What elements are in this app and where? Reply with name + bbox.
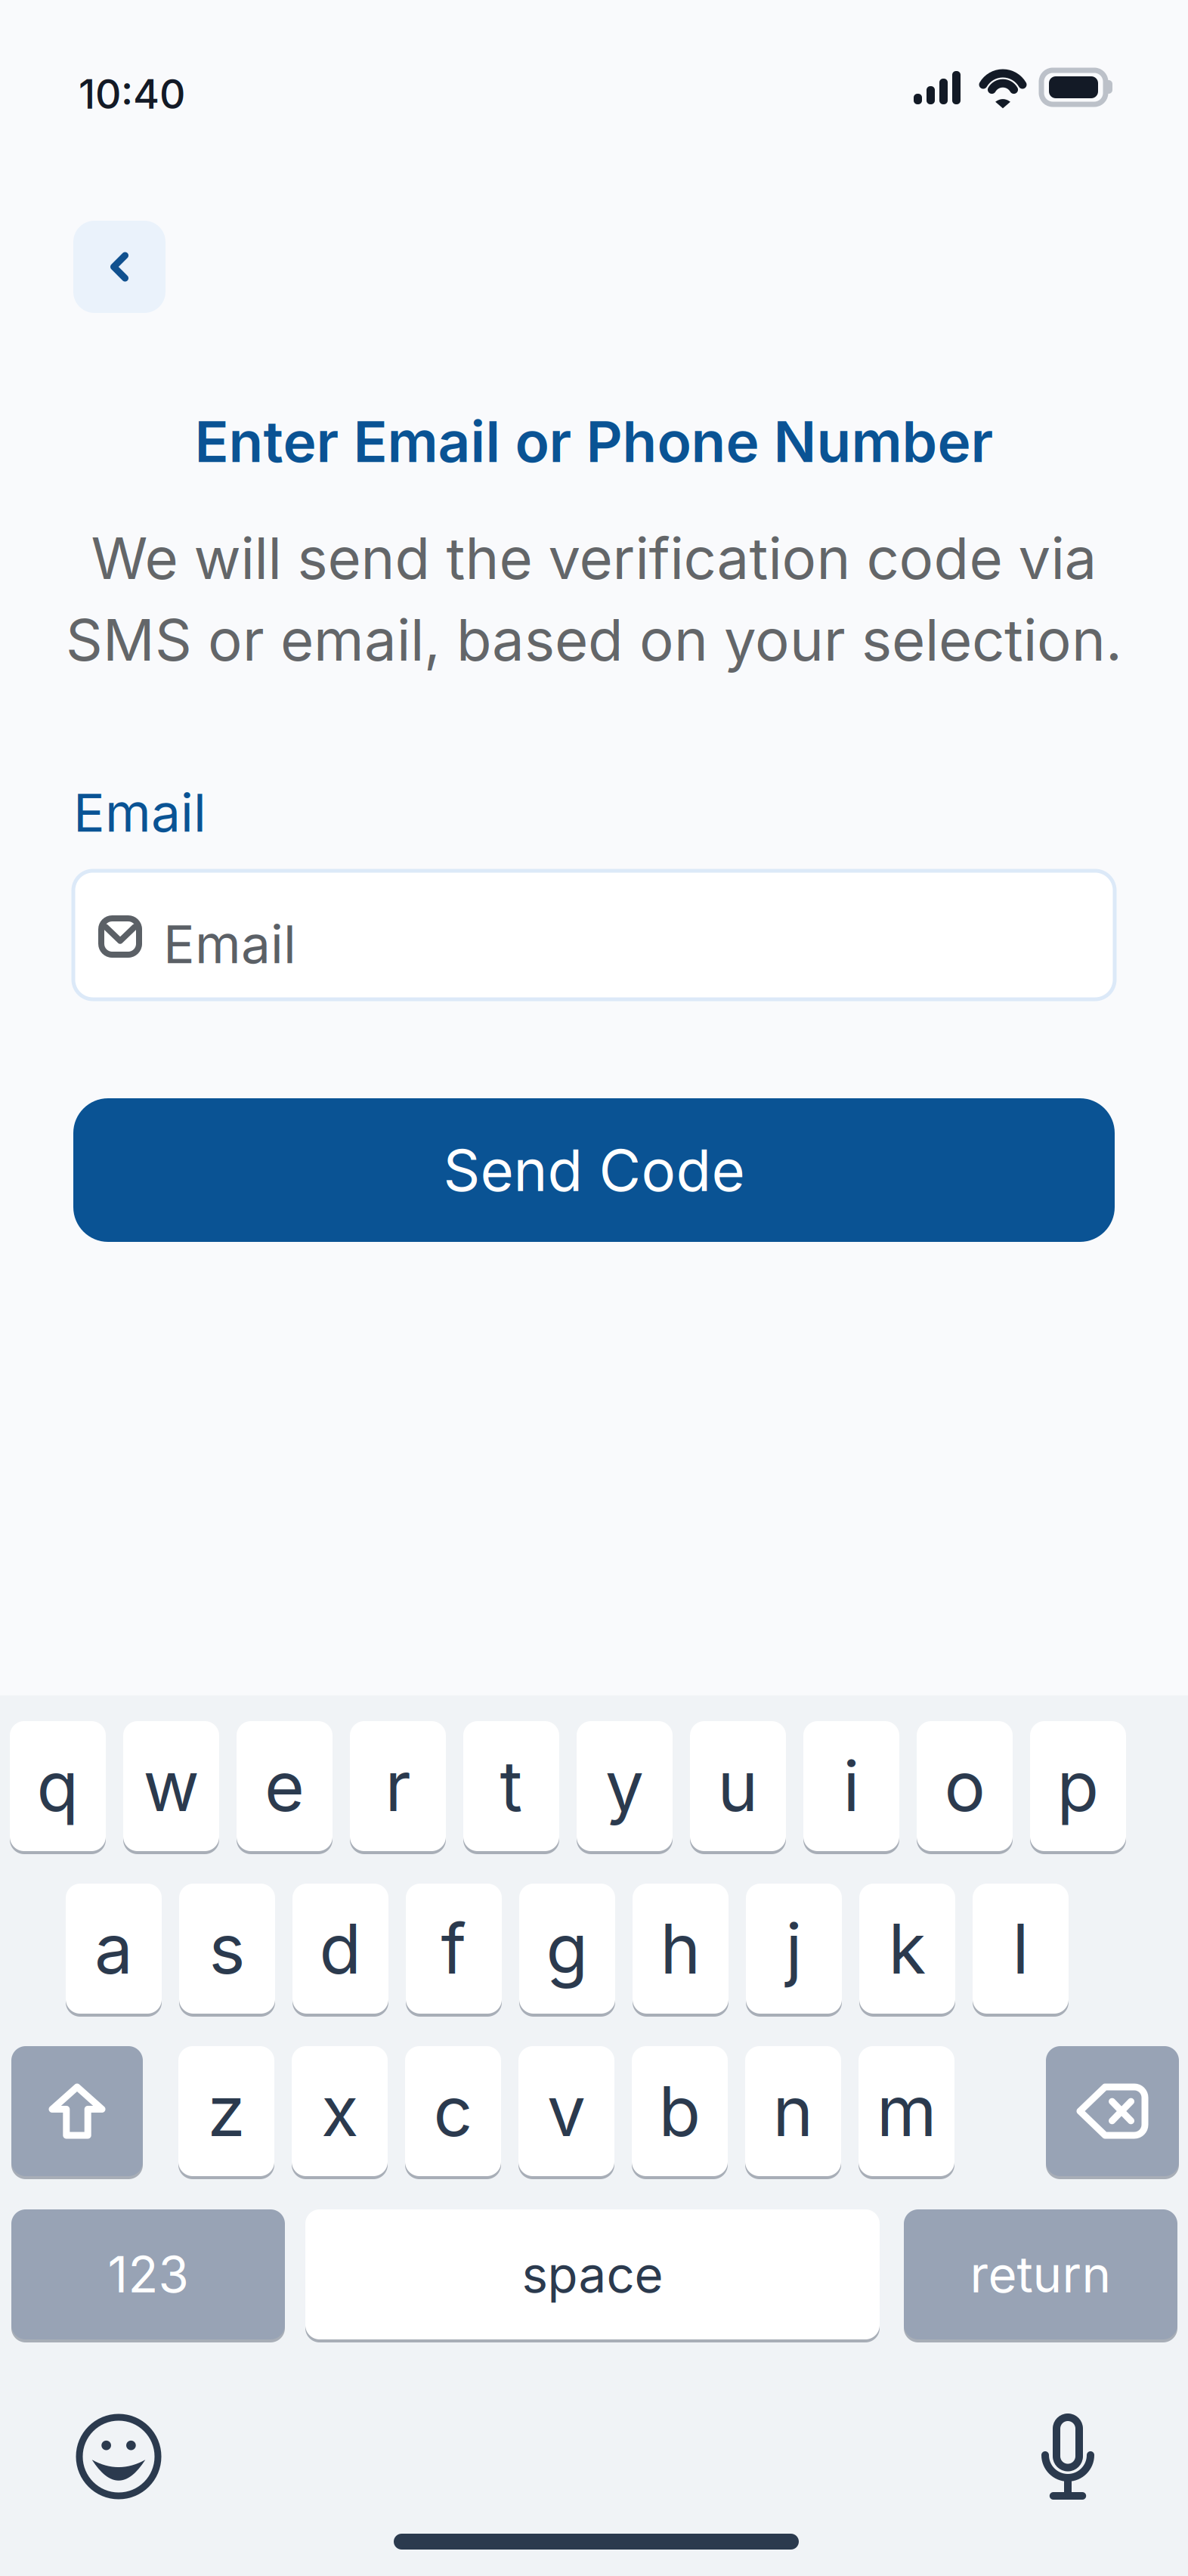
- button[interactable]: k: [859, 1884, 955, 2017]
- button[interactable]: a: [66, 1884, 162, 2017]
- staticText: c: [433, 2070, 473, 2153]
- staticText: y: [605, 1745, 644, 1828]
- button[interactable]: Email: [73, 871, 1115, 999]
- button[interactable]: p: [1030, 1721, 1126, 1854]
- button[interactable]: q: [10, 1721, 106, 1854]
- button[interactable]: s: [179, 1884, 275, 2017]
- staticText: Email: [73, 781, 206, 844]
- staticText: m: [877, 2070, 936, 2153]
- staticText: q: [37, 1745, 79, 1828]
- button[interactable]: Dictate: [1045, 2417, 1091, 2496]
- staticText: space: [522, 2245, 663, 2304]
- staticText: We will send the verification code via: [91, 523, 1097, 593]
- button[interactable]: e: [237, 1721, 333, 1854]
- staticText: SMS or email, based on your selection.: [66, 605, 1122, 674]
- staticText: i: [843, 1745, 860, 1828]
- button[interactable]: u: [690, 1721, 786, 1854]
- staticText: d: [319, 1907, 362, 1990]
- staticText: Enter Email or Phone Number: [195, 407, 993, 476]
- staticText: o: [944, 1745, 985, 1828]
- button[interactable]: x: [292, 2046, 388, 2179]
- staticText: 123: [108, 2245, 189, 2304]
- button[interactable]: Delete: [1046, 2046, 1179, 2179]
- button[interactable]: w: [123, 1721, 219, 1854]
- staticText: t: [500, 1745, 523, 1828]
- button[interactable]: return: [904, 2209, 1177, 2342]
- staticText: g: [546, 1907, 588, 1990]
- button[interactable]: l: [973, 1884, 1069, 2017]
- staticText: return: [970, 2245, 1111, 2304]
- staticText: x: [321, 2070, 358, 2153]
- staticText: h: [660, 1907, 701, 1990]
- button[interactable]: z: [178, 2046, 274, 2179]
- button[interactable]: i: [803, 1721, 899, 1854]
- button[interactable]: space: [305, 2209, 880, 2342]
- button[interactable]: y: [577, 1721, 673, 1854]
- staticText: Send Code: [443, 1135, 745, 1205]
- button[interactable]: Back: [73, 221, 166, 313]
- button[interactable]: h: [633, 1884, 729, 2017]
- staticText: s: [209, 1907, 245, 1990]
- staticText: v: [547, 2070, 586, 2153]
- staticText: r: [385, 1745, 411, 1828]
- staticText: 10:40: [79, 70, 185, 118]
- button[interactable]: Emoji keyboard: [79, 2417, 158, 2496]
- staticText: j: [786, 1907, 802, 1990]
- button[interactable]: Shift: [11, 2046, 143, 2179]
- staticText: a: [94, 1907, 133, 1990]
- button[interactable]: n: [745, 2046, 841, 2179]
- staticText: p: [1057, 1745, 1099, 1828]
- button[interactable]: r: [350, 1721, 446, 1854]
- button[interactable]: b: [632, 2046, 728, 2179]
- button[interactable]: j: [746, 1884, 842, 2017]
- button[interactable]: g: [519, 1884, 615, 2017]
- staticText: w: [143, 1745, 199, 1828]
- button[interactable]: c: [405, 2046, 501, 2179]
- staticText: u: [718, 1745, 758, 1828]
- staticText: e: [265, 1745, 305, 1828]
- staticText: z: [207, 2070, 245, 2153]
- staticText: b: [659, 2070, 701, 2153]
- button[interactable]: f: [406, 1884, 502, 2017]
- staticText: l: [1012, 1907, 1029, 1990]
- button[interactable]: t: [463, 1721, 559, 1854]
- button[interactable]: d: [292, 1884, 388, 2017]
- staticText: f: [441, 1907, 467, 1990]
- staticText: n: [773, 2070, 814, 2153]
- button[interactable]: Send Code: [73, 1098, 1115, 1242]
- button[interactable]: v: [518, 2046, 614, 2179]
- button[interactable]: 123: [11, 2209, 285, 2342]
- staticText: Email: [163, 912, 296, 976]
- button[interactable]: m: [859, 2046, 954, 2179]
- staticText: k: [888, 1907, 926, 1990]
- button[interactable]: o: [917, 1721, 1013, 1854]
